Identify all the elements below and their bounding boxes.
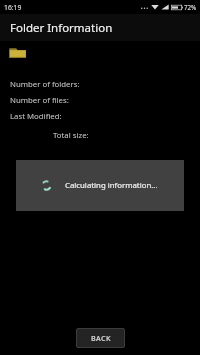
button[interactable]: Loading: [16, 160, 184, 211]
button[interactable]: BACK: [76, 328, 125, 348]
other: Loading: [41, 180, 52, 191]
staticText: Number of files:: [10, 95, 69, 106]
staticText: Total size:: [53, 130, 89, 141]
staticText: 72%: [184, 3, 197, 11]
staticText: Calculating information...: [65, 180, 158, 191]
staticText: Folder Information: [10, 20, 113, 36]
staticText: Number of folders:: [10, 79, 80, 90]
staticText: 16:19: [4, 3, 22, 12]
staticText: Last Modified:: [10, 111, 62, 122]
staticText: BACK: [91, 333, 111, 343]
